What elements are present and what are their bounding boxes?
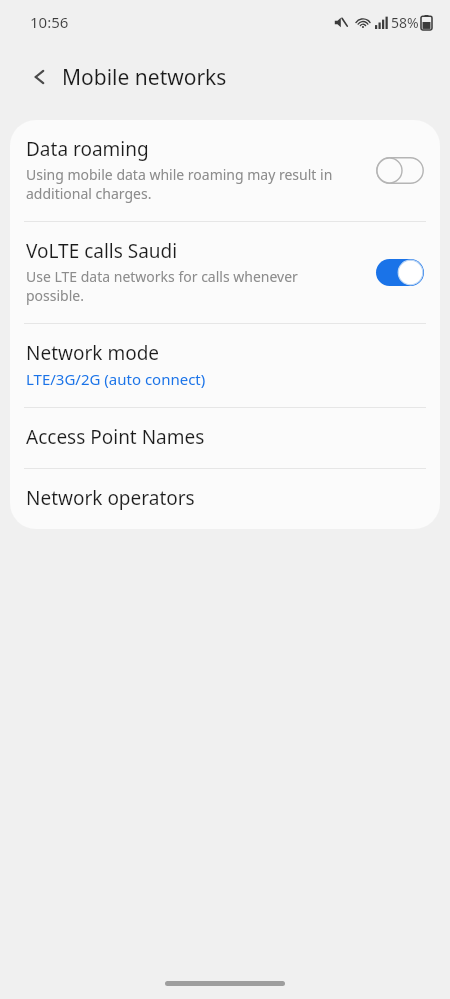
button[interactable]: Off xyxy=(374,153,426,187)
staticText: 10:56 xyxy=(30,12,69,32)
staticText: Network operators xyxy=(26,485,195,511)
button[interactable]: VoLTE calls Saudi xyxy=(10,222,440,323)
staticText: Network mode xyxy=(26,340,160,366)
staticText: Use LTE data networks for calls whenever… xyxy=(26,267,298,305)
button[interactable]: Network operators xyxy=(10,469,440,529)
staticText: Using mobile data while roaming may resu… xyxy=(26,165,333,203)
staticText: LTE/3G/2G (auto connect) xyxy=(26,369,206,389)
button[interactable]: Network mode xyxy=(10,324,440,407)
button[interactable]: On xyxy=(374,255,426,289)
staticText: 58% xyxy=(391,13,419,32)
staticText: VoLTE calls Saudi xyxy=(26,238,178,264)
staticText: Access Point Names xyxy=(26,424,205,450)
button[interactable]: Access Point Names xyxy=(10,408,440,468)
staticText: Mobile networks xyxy=(62,63,227,92)
button[interactable]: Data roaming xyxy=(10,120,440,221)
staticText: Data roaming xyxy=(26,136,149,162)
button[interactable]: Back xyxy=(22,59,58,95)
